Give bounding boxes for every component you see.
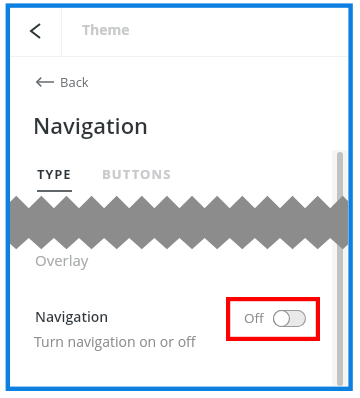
staticText: Turn navigation on or off xyxy=(34,332,196,351)
staticText: BUTTONS xyxy=(102,165,172,183)
staticText: Navigation xyxy=(33,110,149,140)
staticText: Back xyxy=(60,73,89,91)
staticText: Overlay xyxy=(35,250,89,270)
staticText: Navigation xyxy=(35,307,109,326)
other: Navigation toggle, off xyxy=(273,310,306,327)
staticText: Theme xyxy=(82,20,130,39)
button[interactable]: TYPE xyxy=(32,160,76,198)
button[interactable]: Back xyxy=(36,69,89,95)
staticText: TYPE xyxy=(37,165,72,183)
button[interactable]: BUTTONS xyxy=(98,160,176,188)
button[interactable]: Navigation xyxy=(10,304,348,362)
button[interactable]: Navigate back xyxy=(10,8,60,53)
staticText: Off xyxy=(244,309,264,327)
button[interactable]: Off xyxy=(244,308,306,328)
